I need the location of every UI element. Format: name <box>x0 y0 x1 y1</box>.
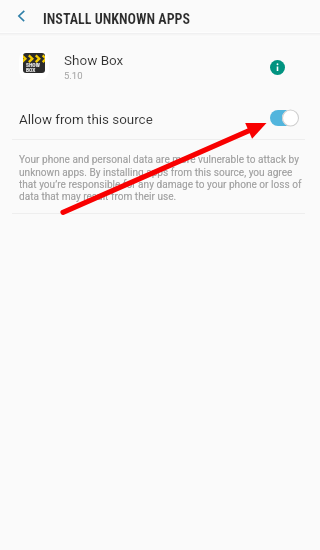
staticText: Allow from this source <box>19 112 153 128</box>
button[interactable]: Allow from this source <box>0 96 320 139</box>
staticText: SHOW <box>26 62 40 68</box>
staticText: Show Box <box>64 52 124 68</box>
staticText: Your phone and personal data are more vu… <box>19 154 304 202</box>
staticText: BOX <box>26 67 36 73</box>
button[interactable]: App info <box>262 52 292 82</box>
staticText: INSTALL UNKNOWN APPS <box>43 11 191 27</box>
staticText: 5.10 <box>64 70 83 81</box>
button[interactable]: SHOW <box>0 37 320 96</box>
button[interactable]: Navigate up <box>4 0 38 32</box>
button[interactable]: Allow from this source, on <box>268 108 301 128</box>
